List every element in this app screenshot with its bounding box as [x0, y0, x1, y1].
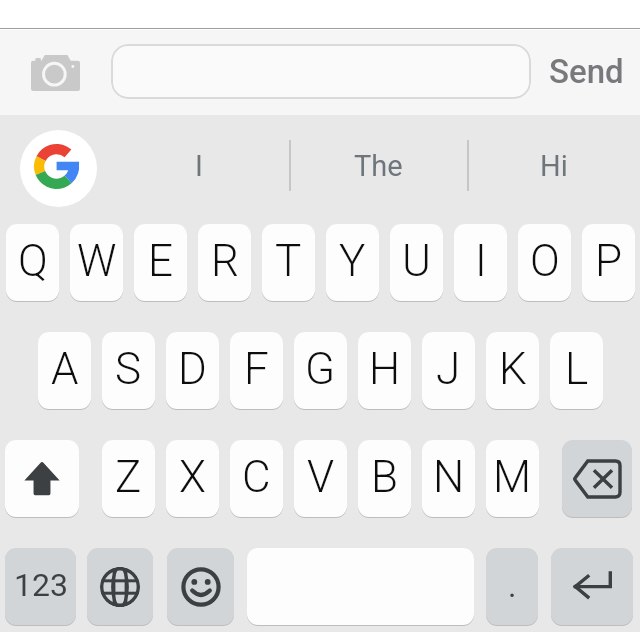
button[interactable]: Send: [540, 44, 632, 99]
staticText: W: [77, 235, 117, 287]
button[interactable]: Period: [486, 548, 538, 625]
button[interactable]: M: [486, 440, 539, 517]
button[interactable]: Switch language: [87, 548, 153, 625]
button[interactable]: The: [298, 131, 458, 201]
staticText: I: [195, 149, 203, 183]
staticText: T: [275, 235, 302, 287]
button[interactable]: Camera: [20, 44, 90, 98]
button[interactable]: K: [486, 332, 539, 409]
staticText: N: [433, 451, 465, 503]
staticText: Hi: [540, 149, 568, 183]
staticText: V: [307, 451, 335, 503]
staticText: A: [51, 343, 79, 395]
staticText: R: [211, 235, 239, 287]
button[interactable]: C: [230, 440, 283, 517]
button[interactable]: W: [70, 224, 123, 301]
button[interactable]: Backspace: [562, 440, 632, 517]
staticText: G: [305, 343, 336, 395]
button[interactable]: E: [134, 224, 187, 301]
staticText: L: [565, 343, 589, 395]
staticText: J: [436, 343, 461, 395]
staticText: C: [242, 451, 271, 503]
button[interactable]: [111, 44, 531, 99]
staticText: D: [178, 343, 207, 395]
staticText: E: [148, 235, 174, 287]
button[interactable]: Numbers: [5, 548, 76, 625]
button[interactable]: B: [358, 440, 411, 517]
staticText: Send: [549, 52, 624, 91]
button[interactable]: Hi: [478, 131, 630, 201]
button[interactable]: Y: [326, 224, 379, 301]
button[interactable]: Shift: [5, 440, 79, 517]
staticText: H: [369, 343, 401, 395]
button[interactable]: Emoji: [167, 548, 234, 625]
button[interactable]: O: [518, 224, 571, 301]
staticText: M: [493, 451, 532, 503]
button[interactable]: I: [110, 131, 288, 201]
staticText: Y: [339, 235, 366, 287]
button[interactable]: A: [38, 332, 91, 409]
staticText: U: [402, 235, 431, 287]
button[interactable]: S: [102, 332, 155, 409]
staticText: Z: [115, 451, 142, 503]
button[interactable]: G: [294, 332, 347, 409]
button[interactable]: P: [582, 224, 635, 301]
staticText: O: [530, 235, 560, 287]
staticText: X: [179, 451, 206, 503]
staticText: The: [354, 149, 403, 183]
button[interactable]: J: [422, 332, 475, 409]
button[interactable]: V: [294, 440, 347, 517]
button[interactable]: I: [454, 224, 507, 301]
button[interactable]: T: [262, 224, 315, 301]
button[interactable]: R: [198, 224, 251, 301]
staticText: F: [244, 343, 269, 395]
button[interactable]: D: [166, 332, 219, 409]
staticText: I: [475, 235, 487, 287]
staticText: P: [595, 235, 623, 287]
staticText: K: [499, 343, 527, 395]
button[interactable]: L: [550, 332, 603, 409]
button[interactable]: X: [166, 440, 219, 517]
button[interactable]: Z: [102, 440, 155, 517]
button[interactable]: U: [390, 224, 443, 301]
staticText: .: [508, 567, 517, 605]
button[interactable]: Q: [6, 224, 59, 301]
button[interactable]: F: [230, 332, 283, 409]
staticText: S: [115, 343, 142, 395]
button[interactable]: Enter: [551, 548, 633, 625]
button[interactable]: N: [422, 440, 475, 517]
staticText: 123: [14, 566, 68, 604]
button[interactable]: H: [358, 332, 411, 409]
button[interactable]: Google: [20, 130, 97, 207]
staticText: Q: [18, 235, 48, 287]
staticText: B: [371, 451, 398, 503]
